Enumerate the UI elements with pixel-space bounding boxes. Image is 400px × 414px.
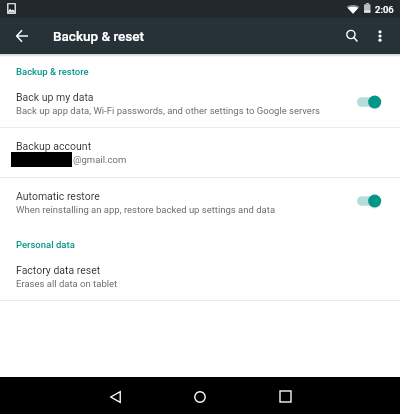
- staticText: Personal data: [16, 239, 75, 250]
- button[interactable]: Factory data reset: [0, 264, 400, 289]
- button[interactable]: Search: [337, 18, 367, 54]
- staticText: @gmail.com: [73, 154, 127, 165]
- staticText: Factory data reset: [16, 264, 101, 276]
- staticText: Backup account: [16, 140, 92, 152]
- staticText: When reinstalling an app, restore backed…: [16, 204, 276, 215]
- staticText: Backup & reset: [53, 28, 144, 44]
- button[interactable]: Back: [73, 377, 158, 414]
- button[interactable]: Recent apps: [243, 377, 328, 414]
- button[interactable]: Back up my data: [0, 91, 400, 117]
- button[interactable]: More options: [367, 18, 393, 54]
- staticText: 2:06: [375, 4, 394, 15]
- button[interactable]: Backup account: [0, 140, 400, 167]
- button[interactable]: Home: [157, 377, 242, 414]
- button[interactable]: Automatic restore: [0, 190, 400, 216]
- staticText: Back up my data: [16, 91, 94, 103]
- button[interactable]: Toggle: [346, 89, 388, 115]
- staticText: Erases all data on tablet: [16, 278, 118, 289]
- button[interactable]: Toggle: [346, 188, 388, 214]
- staticText: Automatic restore: [16, 190, 100, 202]
- button[interactable]: Navigate up: [0, 18, 43, 54]
- staticText: Backup & restore: [16, 66, 89, 77]
- staticText: Back up app data, Wi-Fi passwords, and o…: [16, 105, 321, 116]
